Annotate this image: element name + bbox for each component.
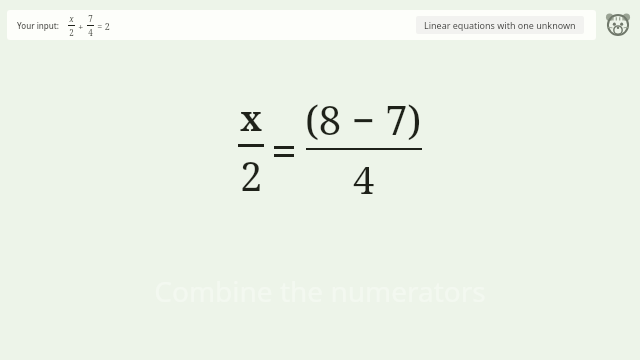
staticText: x (69, 13, 74, 24)
staticText: 4 (88, 27, 93, 38)
staticText: Linear equations with one unknown (424, 19, 576, 31)
staticText: 4 (353, 153, 375, 205)
staticText: = 2 (95, 20, 110, 32)
staticText: 2 (240, 148, 263, 202)
staticText: x (240, 95, 262, 141)
staticText: + (76, 20, 86, 32)
staticText: (8 − 7) (305, 92, 422, 146)
staticText: Your input: (17, 20, 60, 31)
other: Profile avatar (604, 11, 632, 39)
button[interactable]: Your input: (7, 10, 596, 40)
button[interactable]: Linear equations with one unknown (416, 16, 584, 34)
staticText: 2 (69, 27, 74, 38)
staticText: 7 (88, 13, 93, 24)
